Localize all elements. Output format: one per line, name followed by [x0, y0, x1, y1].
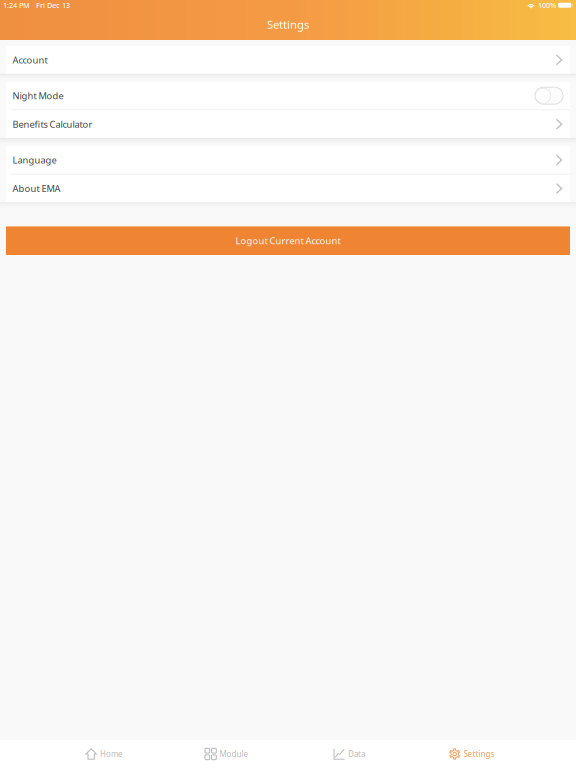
staticText: Language: [12, 154, 56, 166]
staticText: Account: [12, 53, 47, 66]
button[interactable]: Night Mode: [535, 87, 563, 104]
staticText: Night Mode: [12, 89, 63, 102]
button[interactable]: Account: [6, 46, 570, 74]
staticText: 100%: [538, 0, 556, 10]
button[interactable]: Data: [288, 740, 410, 768]
staticText: Settings: [267, 16, 309, 32]
staticText: 1:24 PM: [3, 0, 30, 10]
staticText: Home: [100, 749, 123, 759]
button[interactable]: Benefits Calculator: [6, 110, 570, 138]
staticText: Data: [348, 749, 365, 759]
staticText: Benefits Calculator: [12, 118, 92, 130]
button[interactable]: Language: [6, 146, 570, 174]
staticText: Module: [219, 749, 248, 759]
button[interactable]: Module: [165, 740, 288, 768]
staticText: About EMA: [12, 182, 60, 195]
button[interactable]: Logout Current Account: [6, 226, 570, 255]
staticText: Logout Current Account: [235, 234, 340, 247]
button[interactable]: About EMA: [6, 175, 570, 202]
staticText: Fri Dec 13: [36, 0, 70, 10]
button[interactable]: Settings: [410, 740, 533, 768]
staticText: Settings: [464, 749, 495, 759]
button[interactable]: Home: [43, 740, 165, 768]
